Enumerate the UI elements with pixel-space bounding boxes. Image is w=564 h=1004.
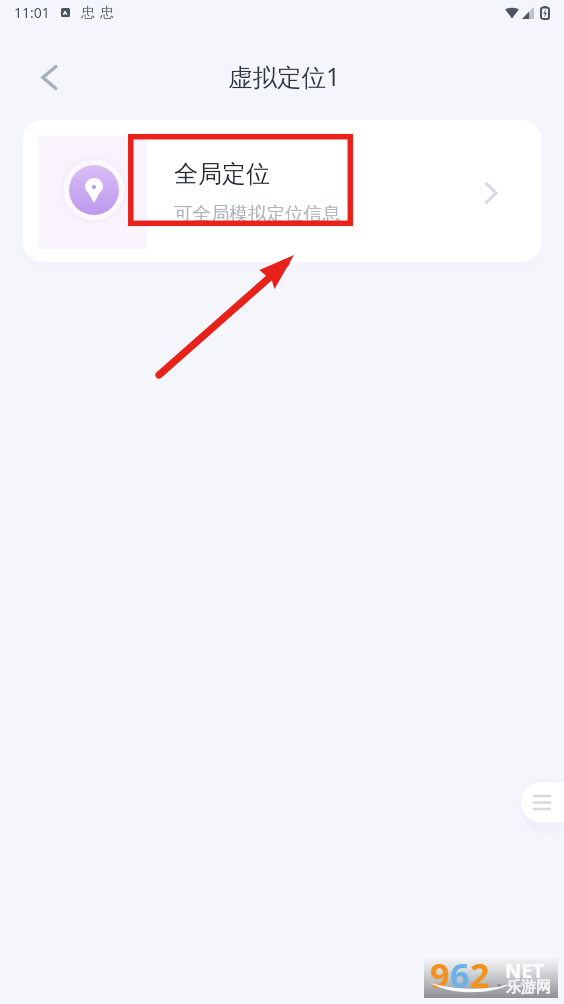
staticText: 忠: [100, 4, 114, 22]
staticText: A: [63, 9, 68, 17]
staticText: .: [496, 962, 503, 995]
staticText: 全局定位: [174, 159, 270, 189]
staticText: 虚拟定位1: [228, 60, 341, 93]
staticText: 11:01: [14, 3, 50, 22]
staticText: 9: [430, 952, 450, 996]
button[interactable]: Menu: [521, 782, 564, 822]
staticText: 6: [450, 952, 470, 996]
button[interactable]: Back: [29, 57, 69, 97]
staticText: 2: [470, 952, 490, 996]
button[interactable]: 全局定位: [23, 120, 541, 262]
staticText: 可全局模拟定位信息: [174, 202, 341, 225]
staticText: 乐游网: [506, 978, 551, 997]
staticText: 忠: [81, 4, 95, 22]
staticText: NET: [505, 957, 544, 984]
